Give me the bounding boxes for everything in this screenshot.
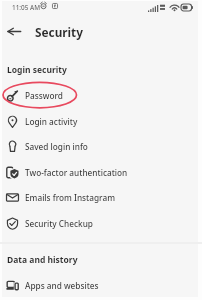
staticText: Password: [25, 90, 63, 101]
staticText: Security: [35, 24, 83, 40]
staticText: Login activity: [25, 116, 78, 127]
staticText: Login security: [7, 64, 67, 76]
button[interactable]: Back: [2, 19, 26, 43]
button[interactable]: Saved login info: [0, 134, 202, 159]
staticText: Saved login info: [25, 141, 88, 152]
staticText: Security Checkup: [25, 218, 93, 229]
staticText: Data and history: [7, 254, 78, 266]
staticText: Two-factor authentication: [25, 167, 128, 178]
button[interactable]: Security Checkup: [0, 211, 202, 236]
button[interactable]: Login activity: [0, 109, 202, 134]
staticText: 11:05 AM: [12, 3, 41, 12]
button[interactable]: Two-factor authentication: [0, 160, 202, 185]
button[interactable]: Apps and websites: [0, 273, 202, 298]
button[interactable]: Emails from Instagram: [0, 185, 202, 210]
staticText: Emails from Instagram: [25, 192, 115, 203]
staticText: Apps and websites: [25, 280, 99, 291]
button[interactable]: Password: [0, 83, 202, 108]
